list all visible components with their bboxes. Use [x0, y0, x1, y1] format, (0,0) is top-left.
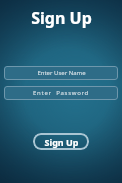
- staticText: Sign Up: [31, 7, 92, 29]
- button[interactable]: Enter User Name: [4, 66, 118, 80]
- staticText: Enter User Name: [37, 69, 86, 77]
- staticText: Enter Password: [33, 89, 89, 97]
- button[interactable]: Sign Up: [33, 133, 89, 150]
- button[interactable]: Enter Password: [4, 86, 118, 100]
- staticText: Sign Up: [44, 136, 79, 148]
